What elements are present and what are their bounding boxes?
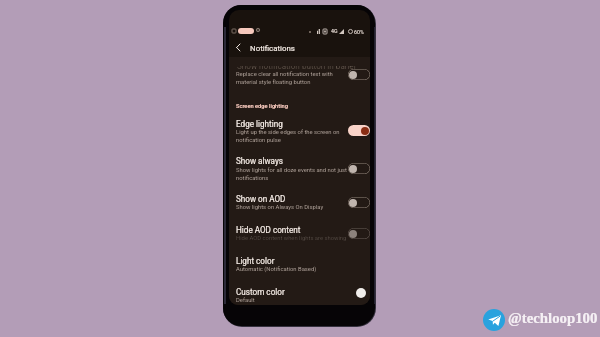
staticText: Notifications: [250, 44, 295, 53]
staticText: Show lights on Always On Display: [236, 204, 324, 211]
button[interactable]: [229, 190, 370, 219]
button[interactable]: Toggle off: [348, 69, 370, 80]
staticText: Screen edge lighting: [236, 103, 288, 110]
button[interactable]: Toggle on: [348, 125, 370, 136]
button[interactable]: Toggle off: [348, 163, 370, 174]
button[interactable]: [229, 252, 370, 281]
button[interactable]: [229, 221, 370, 250]
staticText: Replace clear all notification text with…: [236, 71, 333, 85]
staticText: 60%: [354, 29, 364, 35]
staticText: Edge lighting: [236, 119, 283, 129]
button[interactable]: Back: [231, 41, 244, 54]
staticText: Default: [236, 297, 255, 304]
staticText: @techloop100: [508, 310, 598, 326]
staticText: Hide AOD content when lights are showing: [236, 235, 347, 242]
button[interactable]: [229, 64, 370, 86]
staticText: 4G: [331, 28, 338, 34]
staticText: Show lights for all doze events and not …: [236, 167, 348, 181]
staticText: Show always: [236, 156, 284, 166]
staticText: Show notification button in panel: [237, 66, 356, 69]
staticText: Custom color: [236, 287, 285, 297]
button[interactable]: [229, 283, 370, 312]
button[interactable]: Toggle off: [348, 197, 370, 208]
button[interactable]: Custom color swatch: [356, 288, 366, 298]
staticText: Hide AOD content: [236, 225, 301, 235]
staticText: Light color: [236, 256, 275, 266]
button[interactable]: Telegram: [483, 309, 505, 331]
button[interactable]: [229, 152, 370, 181]
staticText: Light up the side edges of the screen on…: [236, 129, 340, 143]
staticText: Automatic (Notification Based): [236, 266, 317, 273]
button[interactable]: Toggle off: [348, 228, 370, 239]
button[interactable]: [229, 115, 370, 144]
staticText: Show on AOD: [236, 194, 286, 204]
